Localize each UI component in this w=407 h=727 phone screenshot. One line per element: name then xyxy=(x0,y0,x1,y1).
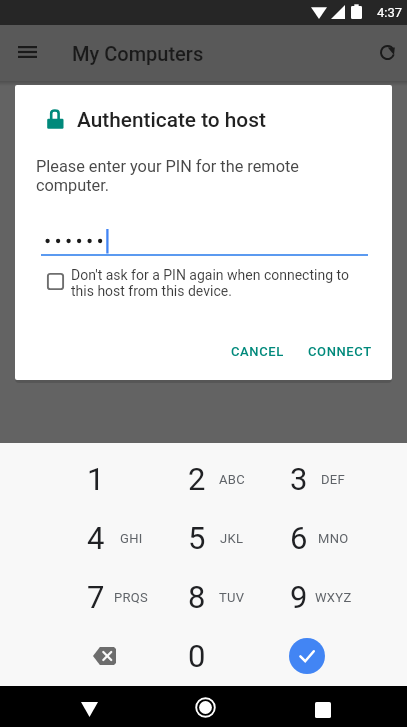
button[interactable]: Done xyxy=(257,627,357,685)
button[interactable]: CONNECT xyxy=(291,335,389,367)
button[interactable]: Back xyxy=(69,689,110,727)
staticText: MNO xyxy=(318,531,349,546)
staticText: WXYZ xyxy=(315,590,352,605)
button[interactable]: Recent apps xyxy=(302,689,343,727)
staticText: Please enter your PIN for the remote com… xyxy=(36,157,299,195)
button[interactable] xyxy=(257,509,357,567)
staticText: PRQS xyxy=(114,590,149,605)
staticText: 9 xyxy=(290,579,308,615)
button[interactable]: Open navigation menu xyxy=(8,33,46,71)
button[interactable] xyxy=(155,450,255,508)
button[interactable] xyxy=(257,568,357,626)
button[interactable] xyxy=(155,509,255,567)
button[interactable] xyxy=(155,568,255,626)
button[interactable]: Don't ask for a PIN again when connectin… xyxy=(39,265,72,298)
button[interactable]: Home xyxy=(185,687,226,727)
staticText: GHI xyxy=(120,531,143,546)
staticText: TUV xyxy=(219,590,245,605)
staticText: JKL xyxy=(220,531,244,546)
button[interactable] xyxy=(257,450,357,508)
staticText: Authenticate to host xyxy=(77,108,266,132)
button[interactable] xyxy=(54,450,154,508)
staticText: 4:37 xyxy=(377,5,403,20)
staticText: 2 xyxy=(188,461,206,497)
staticText: 5 xyxy=(188,520,206,556)
staticText: CONNECT xyxy=(308,344,372,359)
staticText: ABC xyxy=(219,472,245,487)
button[interactable]: Backspace xyxy=(54,627,154,685)
staticText: DEF xyxy=(321,472,346,487)
button[interactable]: Refresh xyxy=(368,33,407,72)
staticText: 8 xyxy=(188,579,206,615)
staticText: Don't ask for a PIN again when connectin… xyxy=(71,267,349,299)
staticText: 4 xyxy=(87,520,105,556)
staticText: 6 xyxy=(290,520,308,556)
button[interactable] xyxy=(54,509,154,567)
staticText: 0 xyxy=(188,638,206,674)
staticText: 7 xyxy=(87,579,105,615)
button[interactable] xyxy=(54,568,154,626)
staticText: My Computers xyxy=(72,42,204,65)
staticText: 1 xyxy=(87,461,105,497)
button[interactable] xyxy=(155,627,255,685)
staticText: CANCEL xyxy=(231,344,284,359)
staticText: 3 xyxy=(290,461,308,497)
button[interactable]: CANCEL xyxy=(216,335,299,367)
